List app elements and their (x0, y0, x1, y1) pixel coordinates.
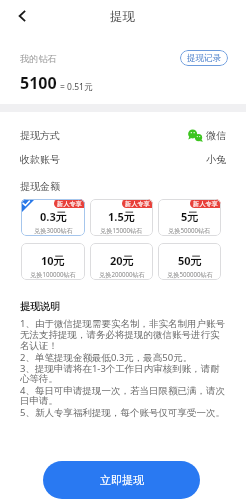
button[interactable]: 50元 (158, 243, 221, 280)
staticText: 提现说明 (20, 300, 60, 313)
staticText: 兑换100000钻石 (30, 270, 76, 278)
staticText: = 0.51元 (60, 81, 93, 93)
staticText: 我的钻石 (20, 53, 57, 65)
button[interactable]: 1.5元 (90, 199, 153, 236)
button[interactable]: 5元 (158, 199, 221, 236)
staticText: 收款账号 (20, 153, 60, 166)
staticText: 20元 (110, 253, 134, 268)
button[interactable]: Back (11, 5, 33, 27)
staticText: 微信 (206, 129, 226, 142)
staticText: 新人专享 (57, 200, 82, 208)
button[interactable]: 20元 (90, 243, 153, 280)
staticText: 兑换200000钻石 (99, 270, 145, 278)
button[interactable]: 0.3元 (21, 199, 85, 236)
staticText: 新人专享 (125, 200, 150, 208)
button[interactable]: 提现记录 (180, 50, 228, 66)
staticText: 5100 (20, 72, 57, 94)
staticText: 5元 (181, 209, 199, 224)
staticText: 立即提现 (100, 473, 144, 487)
staticText: 1、由于微信提现需要实名制，非实名制用户账号无法支持提现，请务必将提现的微信账号… (20, 317, 226, 418)
staticText: 10元 (41, 253, 65, 268)
staticText: 新人专享 (193, 200, 218, 208)
button[interactable]: 立即提现 (43, 461, 200, 499)
staticText: 兑换50000钻石 (168, 226, 211, 234)
staticText: 提现记录 (187, 53, 221, 64)
staticText: 小兔 (206, 153, 226, 166)
staticText: 0.3元 (40, 209, 67, 224)
staticText: 50元 (178, 253, 202, 268)
staticText: 提现方式 (20, 129, 60, 142)
staticText: 1.5元 (108, 209, 135, 224)
staticText: 兑换500000钻石 (167, 270, 213, 278)
staticText: 兑换3000钻石 (34, 226, 73, 234)
button[interactable]: 10元 (21, 243, 85, 280)
staticText: 提现金额 (20, 180, 60, 193)
staticText: 兑换15000钻石 (100, 226, 143, 234)
staticText: 提现 (110, 9, 135, 25)
